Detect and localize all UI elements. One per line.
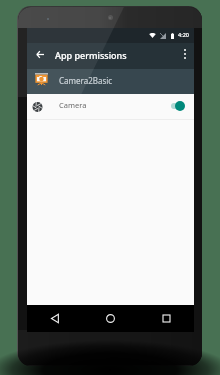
button[interactable] bbox=[27, 94, 194, 119]
button[interactable]: Back bbox=[27, 305, 82, 332]
staticText: 4:20 bbox=[178, 31, 189, 38]
staticText: Camera2Basic bbox=[59, 75, 113, 86]
button[interactable]: Recent apps bbox=[138, 305, 194, 332]
button[interactable]: More options bbox=[172, 41, 197, 67]
button[interactable]: Home bbox=[82, 305, 138, 332]
staticText: Camera bbox=[59, 100, 87, 110]
staticText: App permissions bbox=[55, 49, 127, 61]
button[interactable]: Navigate up bbox=[28, 41, 52, 67]
